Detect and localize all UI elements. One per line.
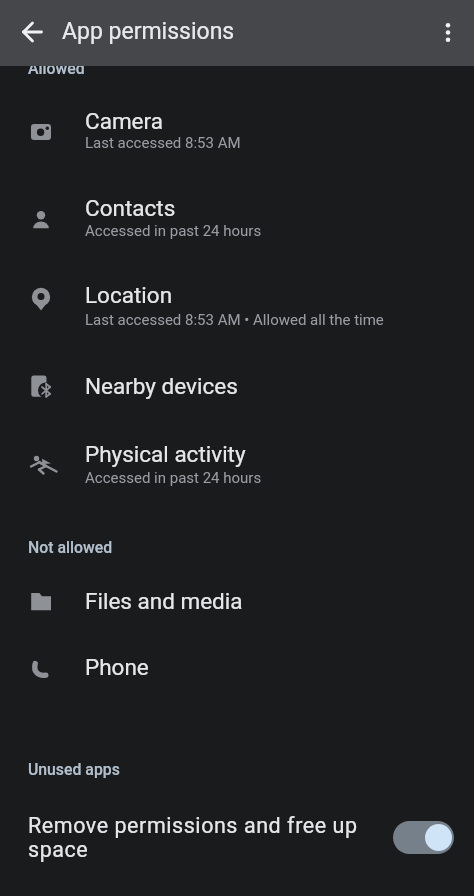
staticText: Not allowed <box>28 538 113 557</box>
staticText: Location <box>85 282 173 308</box>
staticText: Accessed in past 24 hours <box>85 469 262 487</box>
button[interactable] <box>434 18 462 46</box>
staticText: Phone <box>85 654 149 680</box>
staticText: Unused apps <box>28 760 120 779</box>
button[interactable]: Files and media <box>0 567 474 635</box>
staticText: Last accessed 8:53 AM • Allowed all the … <box>85 311 384 329</box>
staticText: Accessed in past 24 hours <box>85 222 262 240</box>
button[interactable]: Remove permissions and free up <box>0 790 474 880</box>
button[interactable]: Contacts <box>0 172 474 260</box>
staticText: Last accessed 8:53 AM <box>85 134 241 152</box>
button[interactable]: Nearby devices <box>0 352 474 420</box>
staticText: Files and media <box>85 588 243 614</box>
staticText: Contacts <box>85 195 176 221</box>
button[interactable]: Camera <box>0 84 474 172</box>
staticText: space <box>28 837 89 862</box>
staticText: App permissions <box>62 18 235 45</box>
staticText: Remove permissions and free up <box>28 813 358 838</box>
button[interactable]: Physical activity <box>0 420 474 508</box>
button[interactable]: Phone <box>0 635 474 703</box>
staticText: Nearby devices <box>85 373 238 399</box>
staticText: Allowed <box>28 59 85 78</box>
button[interactable]: Location <box>0 260 474 348</box>
button[interactable] <box>18 18 46 46</box>
staticText: Camera <box>85 108 163 134</box>
staticText: Physical activity <box>85 441 246 467</box>
